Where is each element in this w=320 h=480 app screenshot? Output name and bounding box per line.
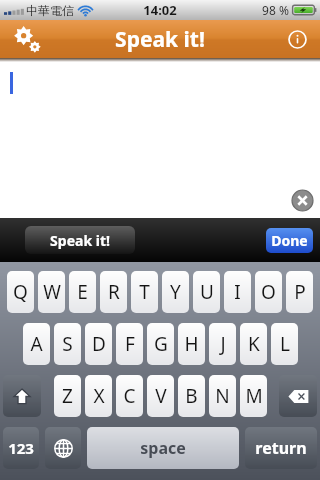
staticText: 中華電信 [26,3,74,18]
staticText: X [93,383,105,409]
button[interactable]: Done [266,228,313,253]
staticText: 98 % [262,2,289,18]
button[interactable]: W [38,271,65,313]
button[interactable]: Speak it! [25,226,135,254]
button[interactable]: S [54,323,81,365]
button[interactable]: space [87,427,239,469]
button[interactable]: I [224,271,251,313]
button[interactable]: Backspace [279,375,317,417]
staticText: D [92,331,106,357]
staticText: P [294,279,306,305]
staticText: Q [13,279,28,305]
staticText: S [62,331,73,357]
staticText: Z [62,383,73,409]
button[interactable]: 123 [3,427,39,469]
staticText: 14:02 [143,1,177,19]
button[interactable]: E [69,271,96,313]
staticText: N [215,383,230,409]
button[interactable]: Shift [3,375,41,417]
staticText: U [200,279,214,305]
staticText: Y [170,279,181,305]
staticText: space [140,437,186,459]
staticText: M [245,383,263,409]
button[interactable]: L [271,323,298,365]
button[interactable]: Clear text [292,190,313,211]
staticText: Speak it! [50,231,110,250]
button[interactable]: Clear text [0,62,320,218]
button[interactable]: U [193,271,220,313]
button[interactable]: V [147,375,174,417]
button[interactable]: K [240,323,267,365]
staticText: Done [271,231,308,250]
staticText: F [125,331,135,357]
staticText: K [248,331,260,357]
button[interactable]: Z [54,375,81,417]
staticText: C [123,383,136,409]
button[interactable]: H [178,323,205,365]
staticText: T [139,279,150,305]
staticText: V [155,383,167,409]
button[interactable]: J [209,323,236,365]
staticText: 123 [8,438,34,458]
button[interactable]: B [178,375,205,417]
button[interactable]: Info [274,20,320,58]
button[interactable]: G [147,323,174,365]
button[interactable]: R [100,271,127,313]
button[interactable]: Y [162,271,189,313]
staticText: G [154,331,168,357]
button[interactable]: N [209,375,236,417]
staticText: W [43,279,61,305]
button[interactable]: return [245,427,317,469]
button[interactable]: X [85,375,112,417]
button[interactable]: Change keyboard [45,427,81,469]
staticText: E [77,279,88,305]
button[interactable]: Settings [0,20,54,58]
staticText: return [255,437,307,459]
button[interactable]: T [131,271,158,313]
staticText: Speak it! [115,25,205,54]
staticText: R [108,279,120,305]
button[interactable]: Q [7,271,34,313]
button[interactable]: O [255,271,282,313]
staticText: H [184,331,199,357]
button[interactable]: D [85,323,112,365]
button[interactable]: F [116,323,143,365]
button[interactable]: P [286,271,313,313]
button[interactable]: M [240,375,267,417]
button[interactable]: C [116,375,143,417]
staticText: O [261,279,276,305]
staticText: B [185,383,198,409]
staticText: I [234,279,241,305]
staticText: A [30,331,43,357]
staticText: L [280,331,290,357]
staticText: J [220,331,226,357]
button[interactable]: A [23,323,50,365]
